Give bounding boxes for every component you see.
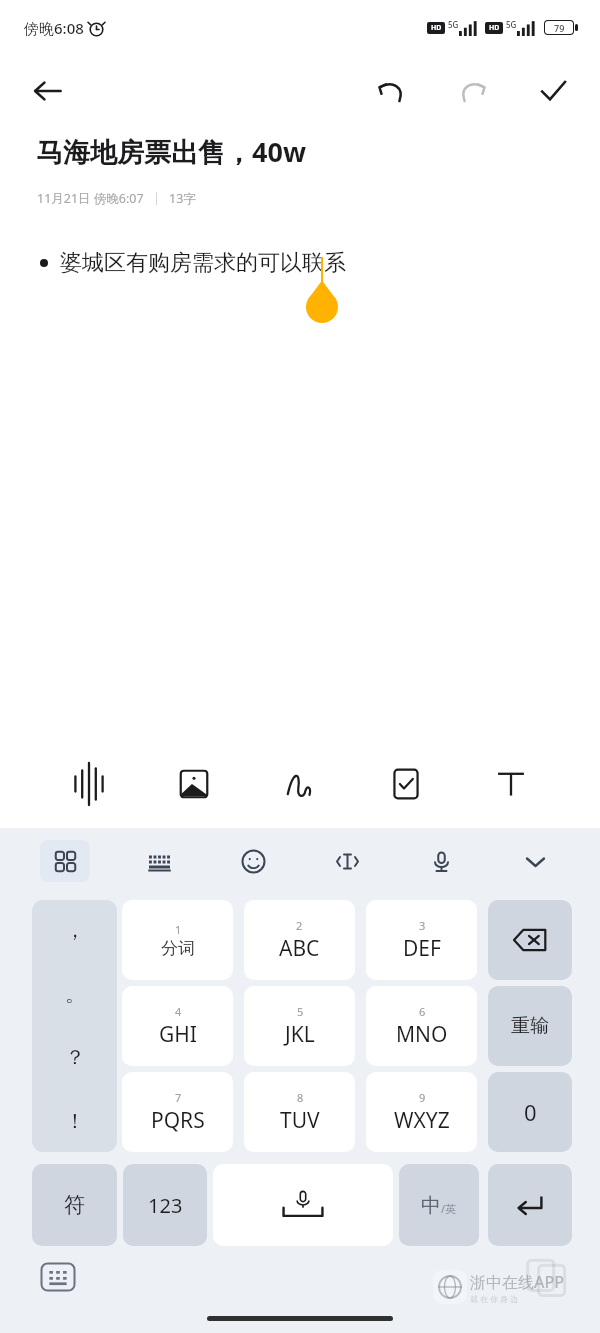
staticText: 3 (419, 918, 426, 933)
button[interactable]: 3 (366, 900, 477, 980)
button[interactable]: Enter (488, 1164, 572, 1246)
button[interactable]: 重输 (488, 986, 572, 1066)
staticText: 11月21日 傍晚6:07 (37, 190, 144, 207)
button[interactable]: Backspace (488, 900, 572, 980)
button[interactable]: Chinese English toggle (399, 1164, 479, 1246)
staticText: JKL (285, 1020, 315, 1049)
staticText: 4 (175, 1004, 182, 1019)
staticText: 13字 (169, 190, 196, 207)
button[interactable]: Keyboard modes (40, 840, 90, 882)
staticText: 就 在 你 身 边 (470, 1293, 519, 1304)
button[interactable]: 4 (122, 986, 233, 1066)
staticText: 6 (419, 1004, 426, 1019)
button[interactable]: Layout (134, 840, 184, 882)
button[interactable]: 7 (122, 1072, 233, 1152)
button[interactable]: Redo (446, 64, 500, 118)
staticText: ， (65, 918, 85, 943)
staticText: 2 (296, 918, 303, 933)
button[interactable]: Undo (364, 64, 418, 118)
button[interactable]: Insert image (163, 753, 225, 815)
staticText: /英 (441, 1201, 457, 1216)
staticText: 8 (297, 1090, 304, 1105)
staticText: 符 (64, 1192, 85, 1218)
staticText: HD (431, 23, 442, 33)
button[interactable]: Emoji (228, 840, 278, 882)
staticText: PQRS (151, 1106, 205, 1135)
button[interactable]: 6 (366, 986, 477, 1066)
button[interactable]: Space (213, 1164, 393, 1246)
staticText: ABC (279, 934, 320, 963)
staticText: 分词 (161, 938, 195, 959)
button[interactable]: Symbols (32, 1164, 117, 1246)
staticText: HD (489, 23, 500, 33)
button[interactable]: Text style (480, 753, 542, 815)
button[interactable]: Voice input (416, 840, 466, 882)
staticText: 中 (421, 1193, 441, 1218)
staticText: 9 (419, 1090, 426, 1105)
staticText: 婆城区有购房需求的可以联系 (60, 249, 346, 277)
button[interactable]: Numbers (123, 1164, 207, 1246)
staticText: 123 (148, 1192, 183, 1219)
staticText: 5G (448, 19, 459, 30)
button[interactable]: 1 (122, 900, 233, 980)
button[interactable]: 0 (488, 1072, 572, 1152)
staticText: DEF (403, 934, 441, 963)
button[interactable]: Handwriting (269, 753, 331, 815)
staticText: 1 (175, 922, 182, 937)
button[interactable]: 5 (244, 986, 355, 1066)
button[interactable]: Done (526, 64, 580, 118)
button[interactable]: Move cursor (322, 840, 372, 882)
staticText: ！ (65, 1109, 85, 1134)
staticText: 傍晚6:08 (24, 18, 84, 38)
staticText: 79 (554, 22, 565, 34)
staticText: GHI (159, 1020, 197, 1049)
button[interactable]: Hide keyboard (510, 840, 560, 882)
button[interactable]: Back (22, 65, 74, 117)
button[interactable]: Voice note (58, 753, 120, 815)
button[interactable]: 9 (366, 1072, 477, 1152)
button[interactable]: 2 (244, 900, 355, 980)
button[interactable]: ， (32, 900, 117, 1152)
staticText: 。 (65, 982, 85, 1007)
staticText: 5G (506, 19, 517, 30)
button[interactable]: Switch keyboard (38, 1260, 78, 1294)
staticText: 重输 (511, 1014, 549, 1038)
staticText: 5 (297, 1004, 304, 1019)
button[interactable]: 8 (244, 1072, 355, 1152)
staticText: 浙中在线APP (470, 1271, 565, 1293)
staticText: ？ (65, 1045, 85, 1070)
button[interactable]: Checklist (375, 753, 437, 815)
staticText: 7 (175, 1090, 182, 1105)
staticText: 0 (524, 1097, 537, 1127)
staticText: TUV (280, 1106, 320, 1135)
staticText: 马海地房票出售，40w (36, 133, 306, 170)
staticText: MNO (396, 1020, 448, 1049)
staticText: WXYZ (394, 1106, 450, 1135)
